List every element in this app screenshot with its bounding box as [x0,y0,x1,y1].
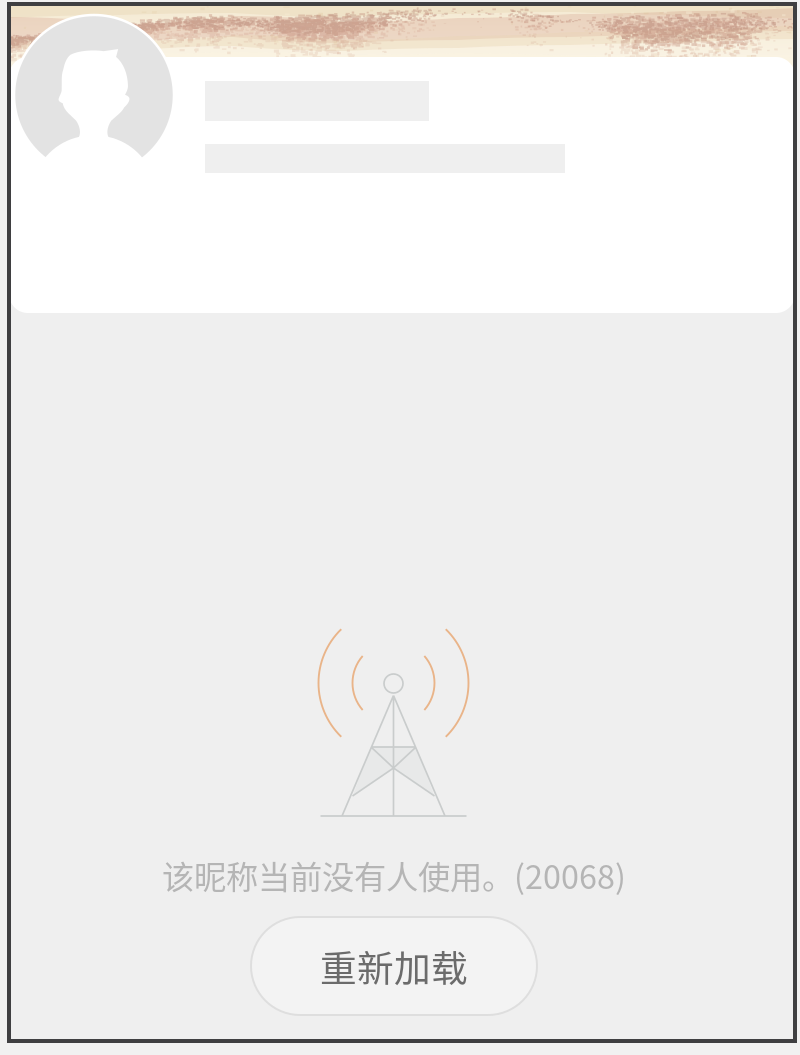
staticText: 重新加载 [320,939,468,993]
button[interactable]: 重新加载 [251,917,537,1015]
staticText: 该昵称当前没有人使用。(20068) [162,852,626,898]
